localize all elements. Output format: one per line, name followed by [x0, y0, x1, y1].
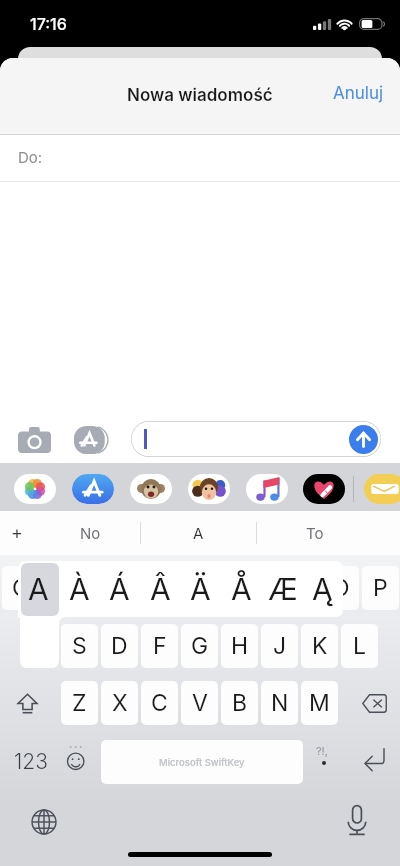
staticText: Microsoft SwiftKey — [159, 757, 245, 768]
button[interactable]: J — [261, 624, 298, 668]
button[interactable]: M — [301, 681, 338, 725]
button[interactable]: G — [181, 624, 218, 668]
button[interactable]: Send — [349, 425, 378, 454]
staticText: + — [11, 522, 23, 544]
button[interactable]: Anuluj — [317, 73, 400, 114]
staticText: Â — [150, 571, 171, 607]
button[interactable]: N — [261, 681, 298, 725]
staticText: H — [231, 632, 249, 660]
button[interactable]: Q — [2, 566, 39, 610]
staticText: Do: — [18, 148, 43, 166]
staticText: L — [353, 632, 367, 660]
staticText: B — [232, 689, 248, 717]
button[interactable]: Digital Touch — [303, 474, 345, 504]
button[interactable]: Â — [140, 561, 181, 617]
button[interactable]: Add — [4, 511, 30, 555]
staticText: 17:16 — [30, 14, 67, 33]
staticText: Ą — [312, 571, 333, 607]
staticText: Å — [231, 571, 252, 607]
staticText: F — [153, 632, 167, 660]
button[interactable]: V — [181, 681, 218, 725]
button[interactable]: S — [61, 624, 98, 668]
button[interactable]: App Store — [72, 474, 114, 504]
staticText: To — [306, 524, 324, 542]
staticText: A — [28, 571, 49, 607]
button[interactable]: L — [341, 624, 378, 668]
button[interactable]: P — [362, 566, 399, 610]
staticText: ?!, — [316, 744, 328, 757]
staticText: Nowa wiadomość — [127, 85, 273, 106]
staticText: J — [273, 632, 287, 660]
button[interactable]: Æ — [262, 561, 303, 617]
button[interactable]: Å — [221, 561, 262, 617]
button[interactable]: D — [101, 624, 138, 668]
button[interactable]: Change language — [31, 809, 57, 835]
staticText: À — [69, 571, 90, 607]
button[interactable]: F — [141, 624, 178, 668]
button[interactable]: Do: — [0, 135, 400, 182]
button[interactable]: Microsoft SwiftKey — [101, 740, 303, 784]
button[interactable]: H — [221, 624, 258, 668]
button[interactable]: À — [59, 561, 100, 617]
staticText: No — [80, 524, 101, 542]
button[interactable]: App Store — [74, 426, 110, 454]
button[interactable]: Ą — [302, 561, 343, 617]
staticText: G — [191, 632, 209, 660]
button[interactable]: E — [82, 566, 119, 610]
button[interactable]: B — [221, 681, 258, 725]
button[interactable]: Emoji — [60, 740, 92, 784]
button[interactable]: No — [40, 511, 140, 555]
button[interactable]: Camera — [18, 427, 51, 453]
staticText: Z — [72, 689, 87, 717]
button[interactable]: A — [141, 511, 256, 555]
staticText: Q — [12, 574, 30, 602]
staticText: P — [373, 574, 388, 602]
button[interactable]: Animoji — [130, 474, 172, 504]
staticText: W — [49, 574, 72, 602]
button[interactable]: Apple Cash — [364, 474, 400, 504]
staticText: Æ — [268, 571, 298, 607]
staticText: U — [252, 574, 270, 602]
staticText: 123 — [14, 749, 48, 774]
staticText: X — [112, 689, 128, 717]
button[interactable]: Memoji — [188, 474, 230, 504]
staticText: D — [111, 632, 128, 660]
staticText: Á — [109, 571, 130, 607]
button[interactable]: Music — [246, 474, 288, 504]
button[interactable]: Shift — [7, 681, 47, 725]
button[interactable]: Voice input — [347, 805, 367, 836]
staticText: N — [271, 689, 289, 717]
button[interactable]: K — [301, 624, 338, 668]
button[interactable]: T — [162, 566, 199, 610]
button[interactable]: Y — [202, 566, 239, 610]
button[interactable]: Enter — [354, 740, 394, 784]
button[interactable]: C — [141, 681, 178, 725]
button[interactable]: Backspace — [354, 681, 394, 725]
button[interactable]: A — [18, 561, 59, 617]
staticText: Anuluj — [333, 83, 384, 104]
button[interactable]: Z — [61, 681, 98, 725]
button[interactable]: X — [101, 681, 138, 725]
staticText: M — [309, 689, 330, 717]
button[interactable]: I — [282, 566, 319, 610]
button[interactable]: O — [322, 566, 359, 610]
button[interactable]: R — [122, 566, 159, 610]
button[interactable]: 123 — [5, 740, 57, 784]
staticText: V — [192, 689, 208, 717]
button[interactable]: Á — [99, 561, 140, 617]
button[interactable]: Send — [131, 421, 381, 457]
button[interactable]: Photos — [14, 474, 56, 504]
button[interactable]: To — [257, 511, 372, 555]
staticText: O — [332, 574, 350, 602]
button[interactable]: W — [42, 566, 79, 610]
button[interactable]: Symbols — [310, 740, 340, 784]
staticText: Ä — [190, 571, 211, 607]
button[interactable]: Ä — [180, 561, 221, 617]
button[interactable]: U — [242, 566, 279, 610]
